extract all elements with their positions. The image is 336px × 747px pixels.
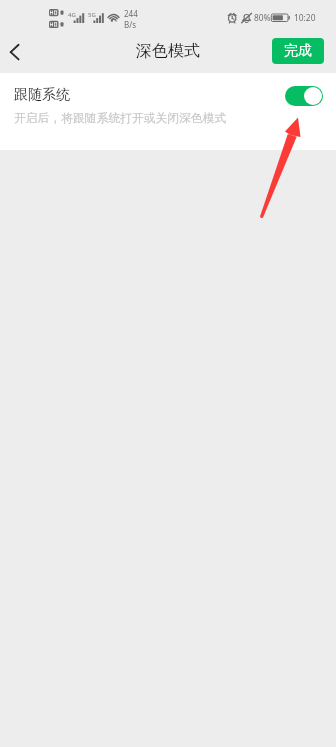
button[interactable]: Follow system switch — [285, 86, 323, 106]
staticText: 跟随系统 — [14, 86, 70, 104]
staticText: 80% — [254, 12, 271, 23]
staticText: 开启后，将跟随系统打开或关闭深色模式 — [14, 111, 227, 126]
button[interactable]: 完成 — [272, 38, 324, 64]
staticText: 244 — [124, 8, 138, 19]
staticText: 完成 — [284, 42, 312, 60]
button[interactable]: 跟随系统 — [0, 73, 336, 150]
staticText: 10:20 — [294, 12, 316, 23]
staticText: 深色模式 — [136, 41, 200, 61]
staticText: B/s — [124, 19, 137, 30]
staticText: 5G — [88, 11, 96, 19]
staticText: 4G — [68, 11, 76, 19]
button[interactable]: Back — [0, 26, 30, 73]
